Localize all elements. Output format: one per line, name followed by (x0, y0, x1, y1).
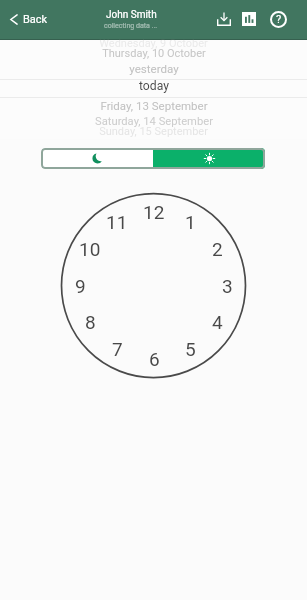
button[interactable]: Saturday, 14 September (0, 113, 307, 129)
staticText: 8 (85, 311, 96, 333)
staticText: Friday, 13 September (100, 99, 208, 112)
staticText: 7 (112, 338, 123, 360)
staticText: ? (276, 13, 282, 26)
button[interactable]: today (0, 77, 307, 95)
staticText: Sunday, 15 September (99, 125, 208, 138)
button[interactable]: Download (212, 7, 236, 31)
staticText: 9 (75, 275, 86, 297)
staticText: 5 (185, 338, 196, 360)
staticText: 12 (143, 201, 165, 223)
button[interactable]: Back (6, 6, 56, 33)
staticText: 11 (106, 211, 128, 233)
staticText: 1 (185, 211, 196, 233)
staticText: 2 (212, 238, 223, 260)
staticText: Thursday, 10 October (102, 47, 206, 60)
button[interactable]: Thursday, 10 October (0, 45, 307, 61)
button[interactable]: Statistics (237, 7, 261, 31)
button[interactable]: Sunday, 15 September (0, 123, 307, 139)
button[interactable]: yesterday (0, 60, 307, 77)
staticText: Wednesday, 9 October (99, 37, 208, 50)
staticText: yesterday (129, 62, 179, 76)
staticText: 3 (222, 275, 233, 297)
staticText: Back (23, 13, 48, 26)
staticText: 6 (149, 348, 160, 370)
button[interactable]: Help (266, 7, 290, 31)
staticText: today (139, 79, 169, 93)
staticText: Saturday, 14 September (95, 115, 213, 128)
staticText: collecting data ... (104, 22, 158, 30)
button[interactable]: Day (153, 148, 265, 169)
staticText: 10 (79, 238, 101, 260)
staticText: 4 (212, 311, 223, 333)
button[interactable]: Friday, 13 September (0, 97, 307, 114)
staticText: John Smith (106, 9, 157, 21)
button[interactable]: Night (41, 148, 153, 169)
button[interactable]: Wednesday, 9 October (0, 35, 307, 51)
